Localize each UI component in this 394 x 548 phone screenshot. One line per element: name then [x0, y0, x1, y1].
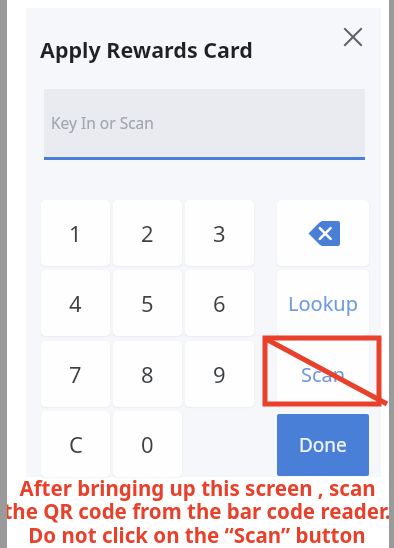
button[interactable]: 0 — [113, 411, 182, 477]
button[interactable]: Done — [277, 414, 369, 476]
staticText: 4 — [69, 288, 82, 318]
staticText: Apply Rewards Card — [40, 35, 253, 64]
button[interactable]: Backspace — [277, 200, 369, 266]
staticText: After bringing up this screen , scan — [19, 474, 376, 502]
button[interactable]: 5 — [113, 270, 182, 336]
staticText: Done — [299, 432, 347, 458]
staticText: Scan — [301, 361, 346, 388]
button[interactable]: 9 — [185, 341, 254, 407]
staticText: Lookup — [288, 290, 359, 317]
staticText: C — [69, 429, 83, 459]
button[interactable]: Lookup — [277, 270, 369, 336]
button[interactable]: C — [41, 411, 110, 477]
staticText: 3 — [213, 218, 226, 248]
staticText: 7 — [69, 359, 82, 389]
staticText: 9 — [213, 359, 226, 389]
staticText: Key In or Scan — [51, 112, 154, 133]
button[interactable]: Key In or Scan — [44, 89, 365, 160]
button[interactable]: 4 — [41, 270, 110, 336]
staticText: 5 — [141, 288, 154, 318]
staticText: 0 — [141, 429, 154, 459]
button[interactable]: 3 — [185, 200, 254, 266]
staticText: the QR code from the bar code reader. — [3, 497, 391, 525]
button[interactable]: 1 — [41, 200, 110, 266]
button[interactable]: Close — [337, 21, 369, 53]
staticText: 8 — [141, 359, 154, 389]
staticText: 6 — [213, 288, 226, 318]
button[interactable]: 7 — [41, 341, 110, 407]
button[interactable]: 8 — [113, 341, 182, 407]
staticText: 2 — [141, 218, 154, 248]
staticText: 1 — [69, 218, 82, 248]
button[interactable]: Scan — [277, 341, 369, 407]
button[interactable]: 6 — [185, 270, 254, 336]
staticText: Do not click on the “Scan” button — [28, 521, 366, 548]
button[interactable]: 2 — [113, 200, 182, 266]
